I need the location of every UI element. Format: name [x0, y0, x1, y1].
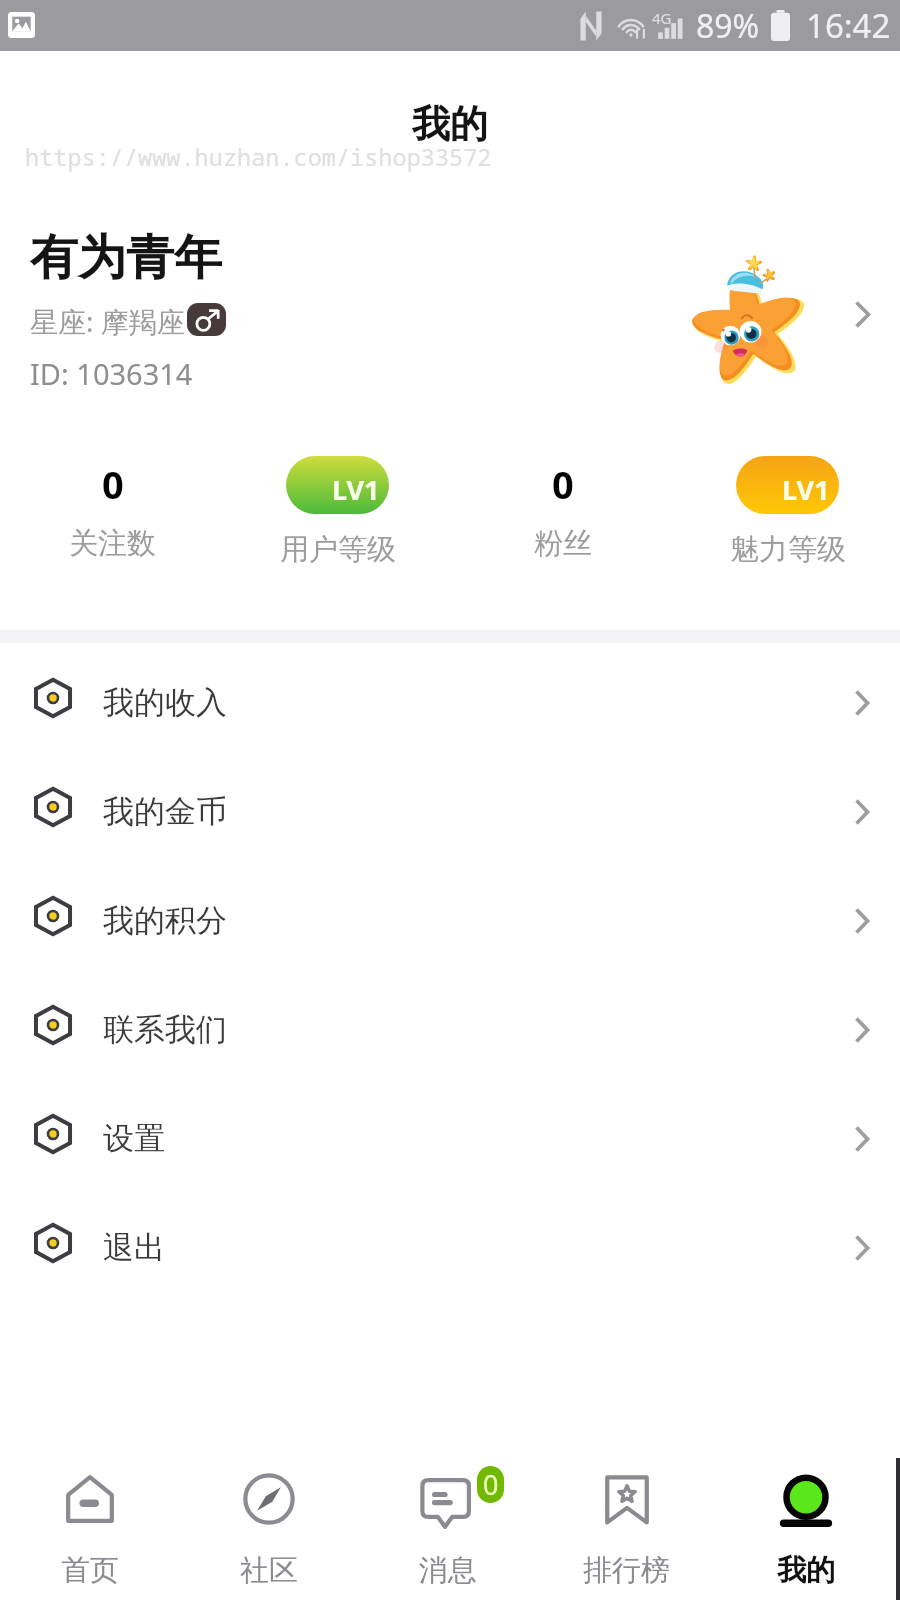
button[interactable]: 有为青年	[0, 202, 900, 422]
staticText: 有为青年	[30, 228, 222, 288]
staticText: 用户等级	[280, 531, 396, 568]
staticText: 联系我们	[103, 1010, 227, 1049]
button[interactable]: 我的	[716, 1455, 895, 1600]
staticText: 消息	[419, 1552, 477, 1589]
staticText: 我的	[777, 1552, 835, 1589]
staticText: LV1	[332, 471, 380, 508]
button[interactable]: 0	[450, 430, 675, 630]
button[interactable]: 设置	[0, 1084, 900, 1193]
button[interactable]: LV1	[675, 430, 900, 630]
button[interactable]: 我的积分	[0, 866, 900, 975]
button[interactable]: 首页	[0, 1455, 179, 1600]
button[interactable]: 我的收入	[0, 648, 900, 757]
staticText: 4G	[652, 8, 672, 28]
staticText: 排行榜	[583, 1552, 670, 1589]
staticText: 星座: 摩羯座	[30, 302, 185, 340]
button[interactable]: 0	[358, 1455, 537, 1600]
staticText: 89%	[696, 4, 760, 48]
staticText: 粉丝	[534, 525, 592, 562]
staticText: 0	[102, 458, 124, 510]
staticText: https://www.huzhan.com/ishop33572	[25, 141, 492, 173]
staticText: 社区	[240, 1552, 298, 1589]
staticText: 退出	[103, 1228, 165, 1267]
staticText: 设置	[103, 1119, 165, 1158]
staticText: 0	[552, 458, 574, 510]
button[interactable]: 排行榜	[537, 1455, 716, 1600]
button[interactable]: LV1	[225, 430, 450, 630]
staticText: 0	[483, 1466, 499, 1503]
staticText: 我的	[412, 100, 488, 148]
staticText: LV1	[782, 471, 830, 508]
button[interactable]: 0	[0, 430, 225, 630]
staticText: 我的积分	[103, 901, 227, 940]
staticText: 魅力等级	[730, 531, 846, 568]
button[interactable]: 退出	[0, 1193, 900, 1302]
staticText: 关注数	[69, 525, 156, 562]
button[interactable]: 联系我们	[0, 975, 900, 1084]
other: Profile detail	[855, 301, 870, 328]
button[interactable]: 社区	[179, 1455, 358, 1600]
staticText: 我的收入	[103, 683, 227, 722]
staticText: 我的金币	[103, 792, 227, 831]
staticText: 首页	[61, 1552, 119, 1589]
staticText: ID: 1036314	[30, 354, 193, 393]
button[interactable]: 我的金币	[0, 757, 900, 866]
other: Screenshot notification	[8, 12, 35, 38]
staticText: 16:42	[806, 3, 891, 48]
